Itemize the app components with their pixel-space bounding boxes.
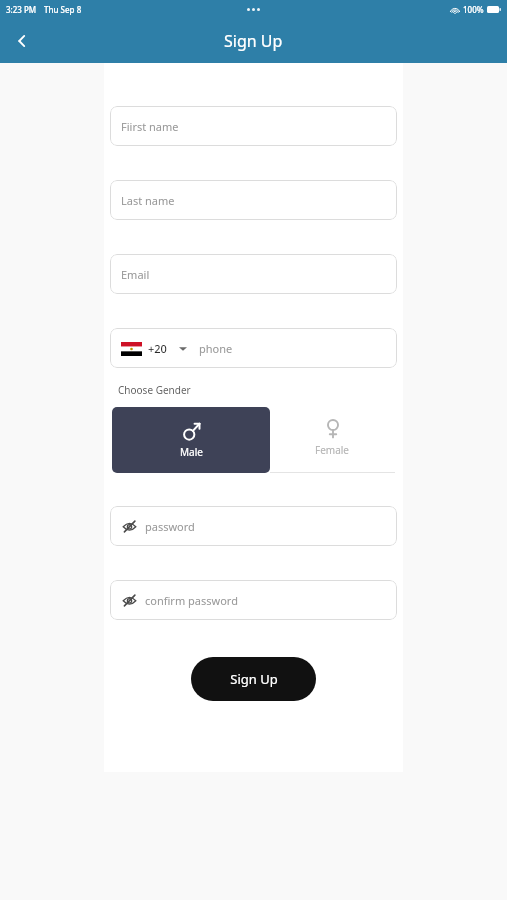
staticText: Fiirst name xyxy=(121,119,179,134)
button[interactable]: Back xyxy=(0,19,44,63)
staticText: +20 xyxy=(148,341,167,356)
staticText: Sign Up xyxy=(230,670,278,688)
button[interactable]: Fiirst name xyxy=(110,106,397,146)
button[interactable]: +20 xyxy=(110,328,397,368)
button[interactable]: Show password xyxy=(110,580,397,620)
staticText: Choose Gender xyxy=(118,383,191,397)
button[interactable]: Email xyxy=(110,254,397,294)
button[interactable]: Show password xyxy=(121,592,137,608)
staticText: Male xyxy=(180,445,203,459)
staticText: Email xyxy=(121,267,150,282)
staticText: Last name xyxy=(121,193,175,208)
button[interactable]: Show password xyxy=(110,506,397,546)
staticText: Sign Up xyxy=(224,30,283,52)
staticText: Female xyxy=(315,443,350,457)
button[interactable]: Last name xyxy=(110,180,397,220)
button[interactable]: Female xyxy=(270,407,395,473)
staticText: Thu Sep 8 xyxy=(44,4,82,15)
staticText: confirm password xyxy=(145,593,238,608)
staticText: 3:23 PM xyxy=(6,4,37,15)
staticText: phone xyxy=(199,341,233,356)
staticText: 100% xyxy=(463,4,484,15)
button[interactable]: Show password xyxy=(121,518,137,534)
staticText: password xyxy=(145,519,195,534)
button[interactable]: Male xyxy=(112,407,270,473)
button[interactable]: Sign Up xyxy=(191,657,316,701)
